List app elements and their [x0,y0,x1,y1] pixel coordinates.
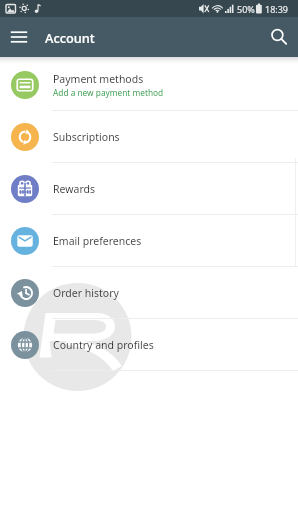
staticText: Add a new payment method [53,87,164,98]
staticText: Subscriptions [53,130,120,144]
staticText: Country and profiles [53,338,154,352]
button[interactable]: Open navigation menu [0,17,38,57]
staticText: Account [45,29,95,46]
button[interactable]: Rewards [0,163,298,215]
button[interactable]: Order history [0,267,298,319]
staticText: Email preferences [53,234,142,248]
staticText: 18:39 [265,3,289,15]
button[interactable]: Email preferences [0,215,298,267]
button[interactable]: Country and profiles [0,319,298,371]
staticText: Order history [53,286,119,300]
button[interactable]: Payment methods [0,59,298,111]
staticText: Payment methods [53,72,144,86]
button[interactable]: Search [260,17,298,57]
staticText: Rewards [53,182,95,196]
button[interactable]: Subscriptions [0,111,298,163]
staticText: 50% [237,3,255,15]
